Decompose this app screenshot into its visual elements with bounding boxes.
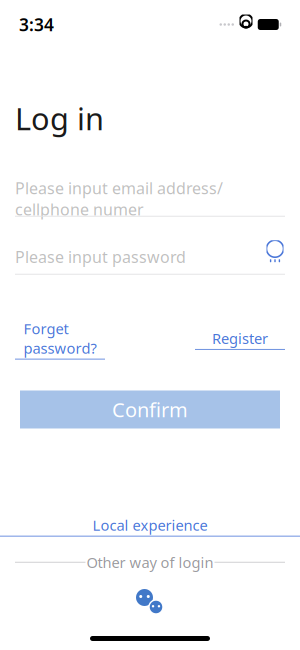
staticText: Local experience bbox=[92, 515, 207, 535]
button[interactable]: Confirm bbox=[20, 390, 280, 428]
staticText: Please input password bbox=[15, 246, 186, 267]
staticText: Register bbox=[212, 328, 268, 348]
staticText: Forget password? bbox=[23, 319, 96, 358]
button[interactable]: Sign in with WeChat bbox=[134, 588, 166, 616]
button[interactable]: Register bbox=[195, 328, 285, 350]
staticText: Confirm bbox=[112, 396, 188, 423]
staticText: 3:34 bbox=[19, 13, 54, 36]
button[interactable]: Forget password? bbox=[15, 319, 105, 359]
button[interactable]: Show password bbox=[265, 250, 285, 264]
staticText: Log in bbox=[15, 98, 104, 139]
staticText: Please input email address/cellphone num… bbox=[15, 177, 223, 220]
button[interactable]: Local experience bbox=[0, 515, 300, 536]
staticText: Other way of login bbox=[86, 552, 213, 572]
